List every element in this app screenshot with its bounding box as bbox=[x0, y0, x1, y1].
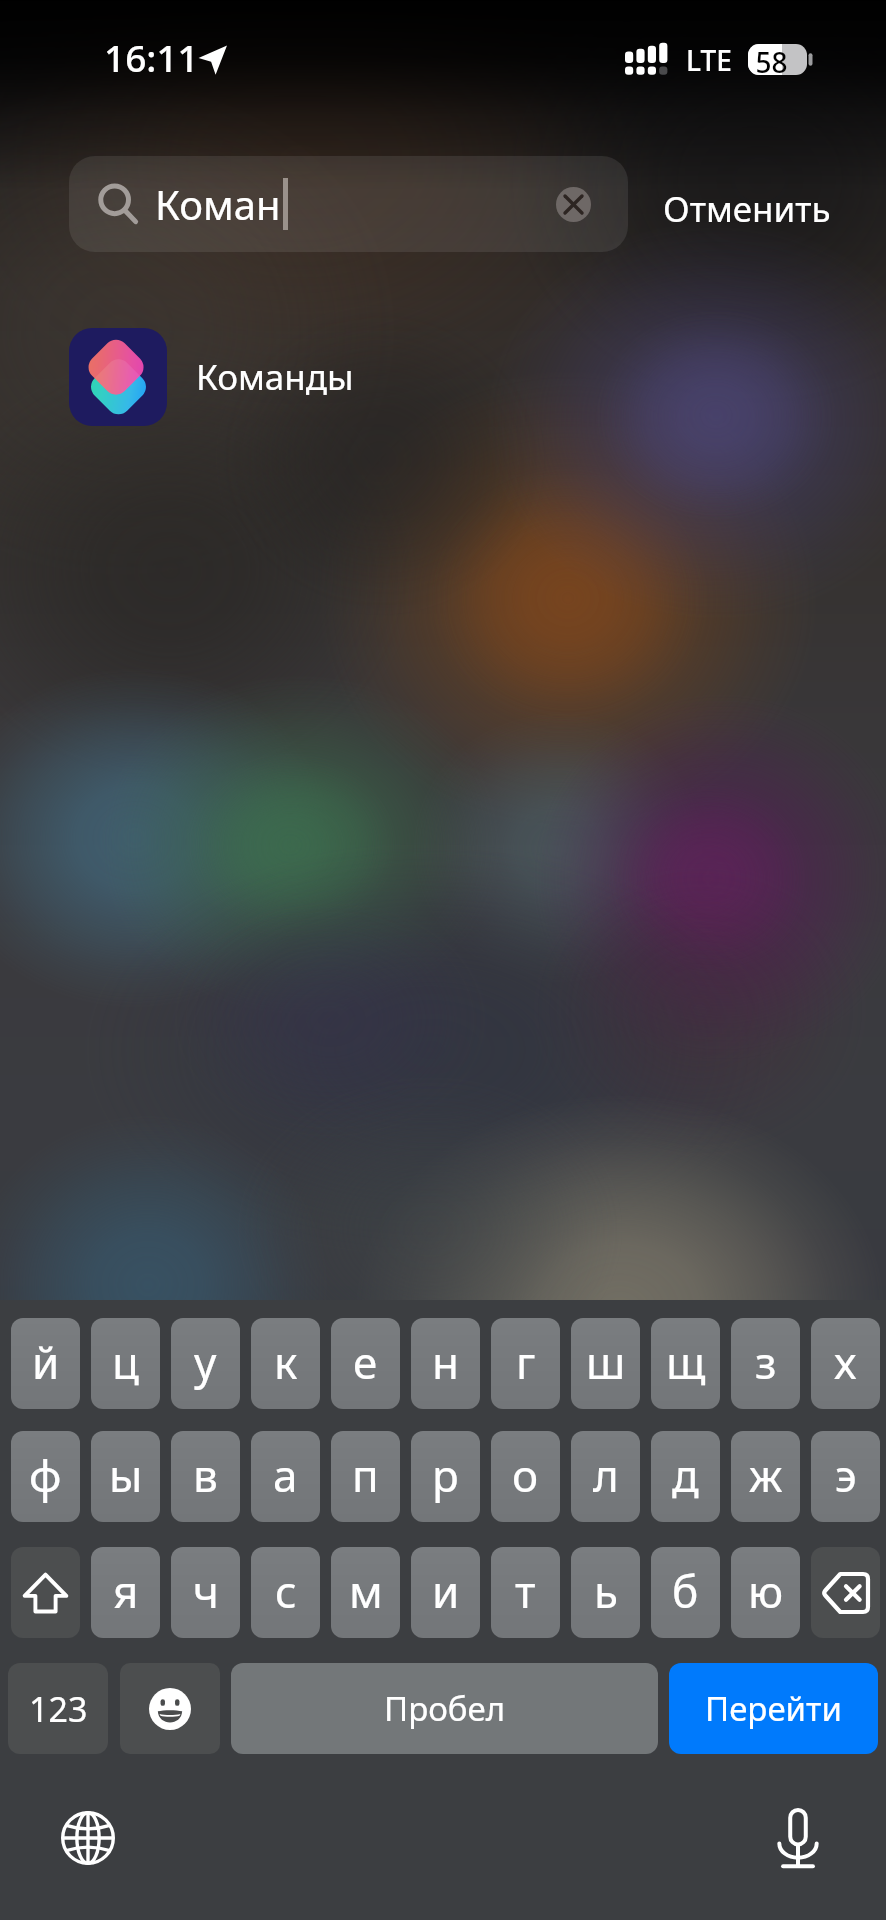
button[interactable]: х bbox=[811, 1318, 880, 1409]
button[interactable]: п bbox=[331, 1431, 400, 1522]
staticText: у bbox=[194, 1332, 217, 1392]
button[interactable]: Dictation bbox=[758, 1798, 838, 1878]
button[interactable]: к bbox=[251, 1318, 320, 1409]
staticText: ю bbox=[748, 1561, 784, 1621]
staticText: ф bbox=[29, 1445, 62, 1505]
staticText: й bbox=[32, 1332, 60, 1392]
button[interactable]: л bbox=[571, 1431, 640, 1522]
button[interactable]: Shift bbox=[11, 1547, 80, 1638]
button[interactable]: и bbox=[411, 1547, 480, 1638]
button[interactable]: щ bbox=[651, 1318, 720, 1409]
staticText: 123 bbox=[29, 1686, 88, 1732]
staticText: ц bbox=[112, 1332, 139, 1392]
button[interactable]: т bbox=[491, 1547, 560, 1638]
button[interactable]: д bbox=[651, 1431, 720, 1522]
button[interactable]: Отменить bbox=[663, 185, 831, 233]
button[interactable]: ю bbox=[731, 1547, 800, 1638]
staticText: т bbox=[515, 1561, 536, 1621]
staticText: р bbox=[432, 1445, 459, 1505]
staticText: щ bbox=[666, 1332, 706, 1392]
button[interactable]: ы bbox=[91, 1431, 160, 1522]
staticText: ч bbox=[193, 1561, 219, 1621]
button[interactable]: г bbox=[491, 1318, 560, 1409]
staticText: э bbox=[835, 1445, 857, 1505]
staticText: а bbox=[273, 1445, 298, 1505]
staticText: н bbox=[432, 1332, 460, 1392]
button[interactable]: Перейти bbox=[669, 1663, 878, 1754]
button[interactable]: б bbox=[651, 1547, 720, 1638]
staticText: Команды bbox=[196, 353, 354, 401]
button[interactable]: ж bbox=[731, 1431, 800, 1522]
staticText: е bbox=[353, 1332, 378, 1392]
button[interactable]: Пробел bbox=[231, 1663, 658, 1754]
button[interactable]: ч bbox=[171, 1547, 240, 1638]
staticText: Отменить bbox=[663, 185, 831, 233]
staticText: 16:11 bbox=[104, 32, 199, 82]
button[interactable]: е bbox=[331, 1318, 400, 1409]
staticText: б bbox=[672, 1561, 699, 1621]
button[interactable]: Команды bbox=[0, 317, 886, 437]
staticText: с bbox=[275, 1561, 297, 1621]
button[interactable]: ц bbox=[91, 1318, 160, 1409]
button[interactable]: ф bbox=[11, 1431, 80, 1522]
staticText: и bbox=[432, 1561, 460, 1621]
staticText: л bbox=[593, 1445, 619, 1505]
staticText: з bbox=[755, 1332, 777, 1392]
staticText: Коман bbox=[155, 177, 281, 231]
button[interactable]: Коман bbox=[69, 156, 628, 252]
staticText: ы bbox=[109, 1445, 143, 1505]
staticText: д bbox=[672, 1445, 699, 1505]
button[interactable]: о bbox=[491, 1431, 560, 1522]
button[interactable]: э bbox=[811, 1431, 880, 1522]
staticText: LTE bbox=[686, 41, 732, 79]
staticText: в bbox=[193, 1445, 218, 1505]
staticText: я bbox=[113, 1561, 139, 1621]
button[interactable]: Emoji bbox=[120, 1663, 220, 1754]
button[interactable]: м bbox=[331, 1547, 400, 1638]
button[interactable]: з bbox=[731, 1318, 800, 1409]
button[interactable]: у bbox=[171, 1318, 240, 1409]
button[interactable]: 123 bbox=[8, 1663, 108, 1754]
button[interactable]: с bbox=[251, 1547, 320, 1638]
staticText: х bbox=[834, 1332, 857, 1392]
staticText: ш bbox=[586, 1332, 626, 1392]
staticText: Перейти bbox=[705, 1686, 842, 1731]
button[interactable]: й bbox=[11, 1318, 80, 1409]
staticText: к bbox=[274, 1332, 298, 1392]
staticText: Пробел bbox=[384, 1686, 506, 1731]
button[interactable]: в bbox=[171, 1431, 240, 1522]
staticText: г bbox=[516, 1332, 536, 1392]
staticText: м bbox=[349, 1561, 383, 1621]
staticText: ь bbox=[594, 1561, 618, 1621]
button[interactable]: ш bbox=[571, 1318, 640, 1409]
staticText: п bbox=[352, 1445, 379, 1505]
staticText: о bbox=[512, 1445, 539, 1505]
button[interactable]: Clear bbox=[556, 187, 591, 222]
staticText: ж bbox=[749, 1445, 783, 1505]
button[interactable]: н bbox=[411, 1318, 480, 1409]
button[interactable]: а bbox=[251, 1431, 320, 1522]
button[interactable]: р bbox=[411, 1431, 480, 1522]
staticText: 58 bbox=[755, 43, 788, 74]
button[interactable]: ь bbox=[571, 1547, 640, 1638]
button[interactable]: Backspace bbox=[811, 1547, 880, 1638]
button[interactable]: я bbox=[91, 1547, 160, 1638]
button[interactable]: Change keyboard language bbox=[48, 1798, 128, 1878]
